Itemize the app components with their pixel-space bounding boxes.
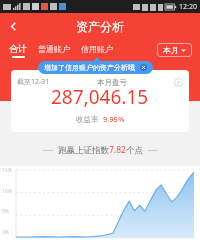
staticText: 287,046.15	[51, 84, 149, 110]
button[interactable]: 本月	[157, 43, 192, 57]
staticText: 资产分析	[76, 19, 124, 34]
staticText: 5%	[2, 208, 10, 215]
staticText: 普通账户	[38, 44, 70, 54]
staticText: 增加了信用账户的资产分析哦	[44, 63, 135, 72]
staticText: 跑赢上证指数	[58, 145, 109, 156]
staticText: 信用账户	[81, 44, 113, 54]
staticText: ?	[177, 79, 180, 87]
staticText: 收益率	[76, 115, 99, 124]
staticText: 个点	[126, 145, 143, 156]
button[interactable]: Help	[174, 78, 183, 87]
staticText: 15%	[2, 167, 12, 174]
staticText: 7.82	[109, 144, 126, 156]
button[interactable]: 增加了信用账户的资产分析哦	[38, 61, 153, 74]
staticText: 本月盈亏	[50, 78, 174, 87]
button[interactable]: 截至12-31	[11, 70, 189, 132]
staticText: 9.95%	[103, 114, 125, 124]
button[interactable]: 信用账户	[80, 44, 114, 58]
button[interactable]: 普通账户	[37, 44, 71, 58]
staticText: 10%	[2, 188, 12, 195]
button[interactable]: Close	[140, 64, 147, 71]
staticText: 合计	[9, 43, 27, 54]
staticText: 截至12-31	[17, 77, 50, 87]
staticText: 0%	[2, 229, 10, 236]
staticText: 本月	[163, 45, 179, 55]
button[interactable]: Back	[0, 13, 26, 39]
staticText: 12:20	[179, 2, 197, 12]
button[interactable]: 合计	[8, 43, 28, 58]
